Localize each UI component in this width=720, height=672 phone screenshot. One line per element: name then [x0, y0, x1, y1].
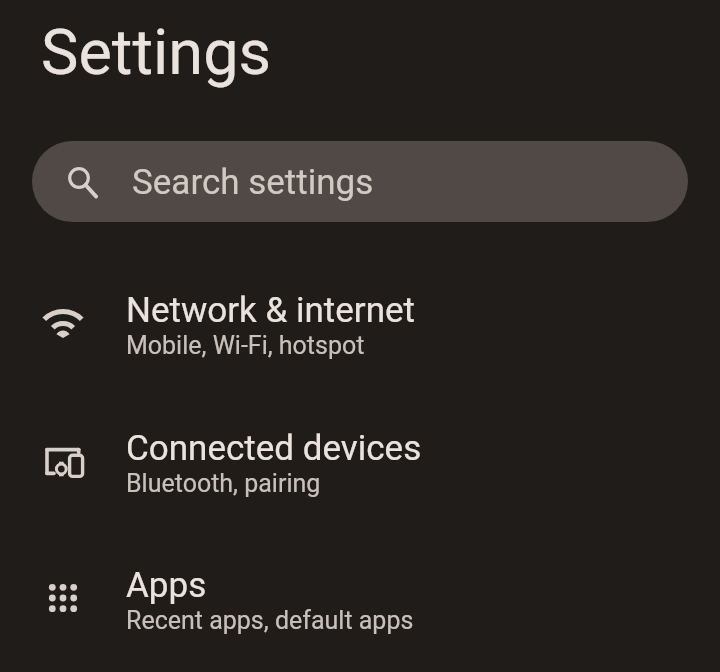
button[interactable]: Apps [0, 529, 720, 666]
staticText: Bluetooth, pairing [126, 469, 321, 498]
staticText: Settings [41, 16, 272, 90]
button[interactable]: Network & internet [0, 254, 720, 391]
button[interactable]: Connected devices [0, 392, 720, 529]
staticText: Search settings [132, 162, 374, 203]
staticText: Recent apps, default apps [126, 606, 414, 635]
staticText: Apps [126, 565, 207, 606]
staticText: Network & internet [126, 290, 416, 331]
staticText: Mobile, Wi-Fi, hotspot [126, 331, 365, 360]
staticText: Connected devices [126, 428, 422, 469]
button[interactable]: Search settings [32, 141, 688, 222]
